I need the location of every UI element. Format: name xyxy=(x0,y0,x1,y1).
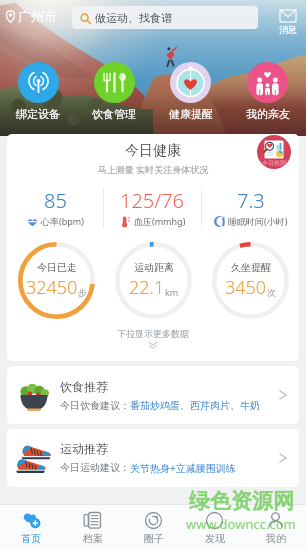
button[interactable]: 饮食推荐 xyxy=(7,366,299,424)
staticText: 番茄炒鸡蛋、西芹肉片、牛奶 xyxy=(130,399,260,412)
button[interactable]: 档案 xyxy=(62,505,123,550)
button[interactable]: 我的 xyxy=(245,505,306,550)
button[interactable]: 85 xyxy=(7,187,103,229)
button[interactable]: 运动距离 xyxy=(105,241,202,319)
staticText: 32450 xyxy=(26,275,78,300)
staticText: 绑定设备 xyxy=(16,107,60,121)
staticText: 做运动、找食谱 xyxy=(95,11,172,25)
staticText: 消息 xyxy=(279,24,297,35)
staticText: 125/76 xyxy=(120,187,185,214)
button[interactable]: 饮食管理 xyxy=(76,62,152,121)
staticText: 3450 xyxy=(225,275,267,300)
button[interactable]: 久坐提醒 xyxy=(202,241,299,319)
button[interactable]: 消息 xyxy=(274,6,302,35)
staticText: 档案 xyxy=(83,532,103,545)
button[interactable]: 我的亲友 xyxy=(229,62,306,121)
staticText: km xyxy=(165,286,179,298)
staticText: 发现 xyxy=(205,532,225,545)
staticText: 马上测量 实时关注身体状况 xyxy=(7,163,299,175)
staticText: 7.3 xyxy=(237,187,265,214)
staticText: 我的 xyxy=(266,532,286,545)
staticText: 今日饮食建议： xyxy=(60,399,130,412)
staticText: 今日已走 xyxy=(37,261,77,274)
staticText: 健康提醒 xyxy=(169,107,213,121)
staticText: 睡眠时间(小时) xyxy=(228,215,288,227)
staticText: 次 xyxy=(267,287,276,298)
button[interactable]: 做运动、找食谱 xyxy=(72,6,258,29)
button[interactable]: 今日检测 xyxy=(257,135,291,169)
staticText: 久坐提醒 xyxy=(231,261,271,274)
staticText: 下拉显示更多数据 xyxy=(7,328,299,339)
button[interactable]: 健康提醒 xyxy=(152,62,229,121)
button[interactable]: 发现 xyxy=(184,505,245,550)
staticText: 今日健康 xyxy=(7,142,299,160)
staticText: 运动距离 xyxy=(134,261,174,274)
staticText: 运动推荐 xyxy=(60,441,108,456)
staticText: 绿色资源网 xyxy=(189,488,294,514)
staticText: 关节热身+立减腰围训练 xyxy=(130,461,236,475)
button[interactable]: 今日已走 xyxy=(7,241,105,319)
staticText: 今日运动建议： xyxy=(60,461,130,474)
staticText: 广州市 xyxy=(18,8,57,24)
staticText: 心率(bpm) xyxy=(41,215,84,227)
staticText: 85 xyxy=(44,187,67,214)
button[interactable]: 运动推荐 xyxy=(7,429,299,487)
button[interactable]: 绑定设备 xyxy=(0,62,76,121)
staticText: 22.1 xyxy=(129,275,165,300)
staticText: www.downcc.com xyxy=(186,515,296,533)
staticText: 饮食管理 xyxy=(92,107,136,121)
staticText: 血压(mmhg) xyxy=(134,215,186,227)
button[interactable]: 圈子 xyxy=(123,505,184,550)
staticText: 饮食推荐 xyxy=(60,379,108,394)
staticText: 我的亲友 xyxy=(246,107,290,121)
staticText: 圈子 xyxy=(144,532,164,545)
button[interactable]: 7.3 xyxy=(202,187,299,229)
staticText: 步 xyxy=(78,287,87,298)
staticText: 首页 xyxy=(21,532,41,545)
button[interactable]: 广州市 xyxy=(4,8,57,24)
button[interactable]: 125/76 xyxy=(104,187,201,229)
button[interactable]: 首页 xyxy=(0,505,62,550)
staticText: 今日检测 xyxy=(262,159,286,167)
